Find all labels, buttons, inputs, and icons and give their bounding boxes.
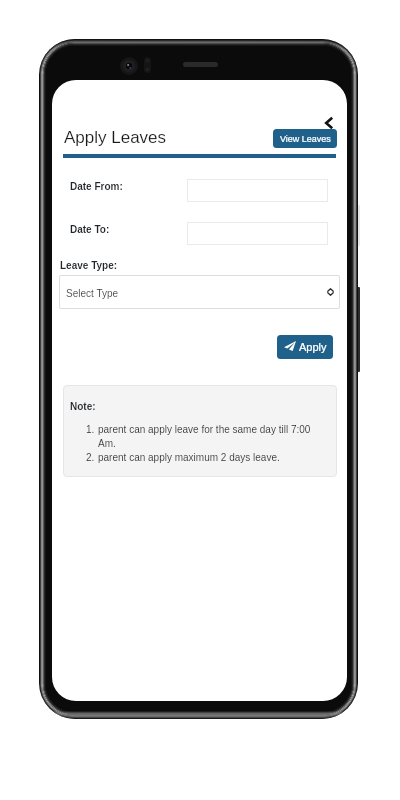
staticText: Apply Leaves: [64, 128, 167, 147]
staticText: Apply: [299, 341, 327, 353]
staticText: Select Type: [66, 288, 119, 299]
staticText: Date From:: [70, 181, 123, 192]
staticText: Date To:: [70, 224, 110, 235]
staticText: View Leaves: [280, 134, 331, 144]
button[interactable]: Date To: [187, 222, 328, 245]
button[interactable]: Back: [317, 111, 341, 135]
staticText: 1.: [86, 424, 98, 435]
staticText: 2.: [86, 452, 98, 463]
staticText: Note:: [70, 401, 96, 412]
staticText: parent can apply leave for the same day …: [98, 424, 324, 449]
staticText: Leave Type:: [60, 260, 118, 271]
button[interactable]: Date From: [187, 179, 328, 202]
button[interactable]: View Leaves: [273, 129, 337, 148]
button[interactable]: Apply: [277, 335, 333, 359]
button[interactable]: Select Type: [59, 275, 340, 309]
staticText: parent can apply maximum 2 days leave.: [98, 452, 324, 463]
